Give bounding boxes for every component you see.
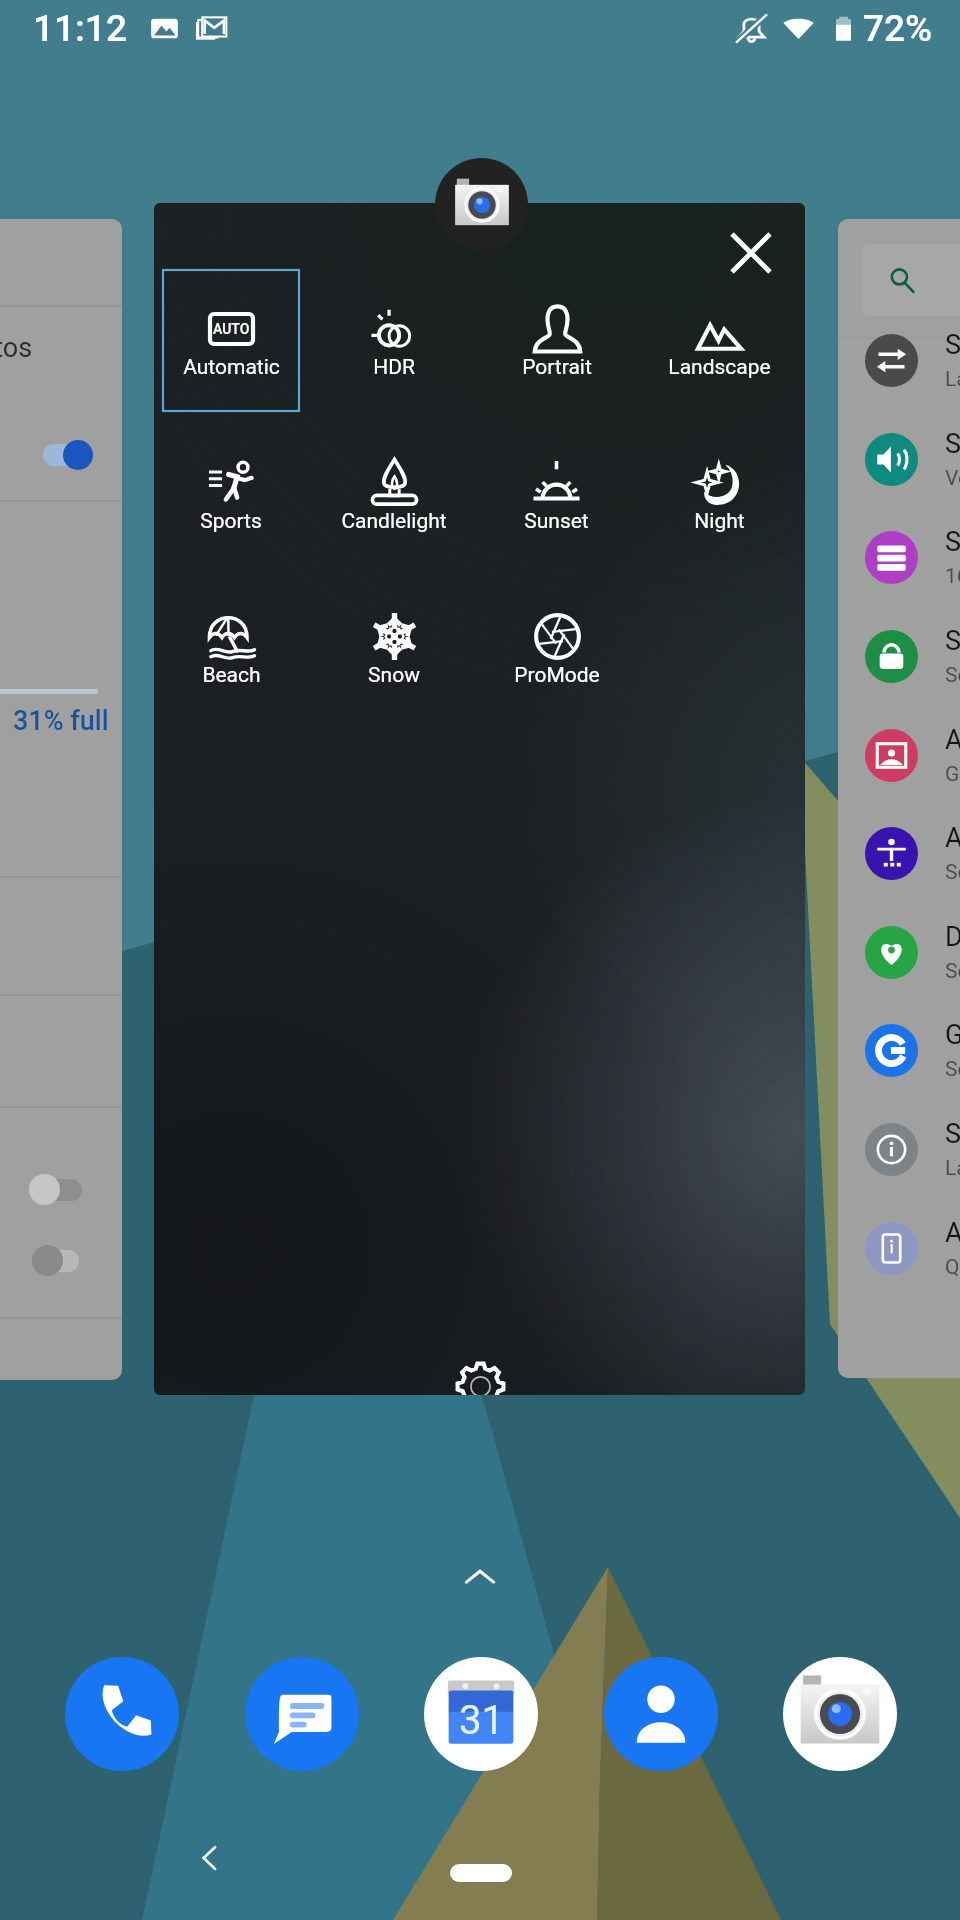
staticText: Screen lock <box>945 663 960 688</box>
staticText: Beach <box>202 663 261 688</box>
button[interactable]: Landscape <box>638 270 801 424</box>
staticText: Portrait <box>522 355 592 380</box>
button[interactable]: Calendar <box>424 1657 538 1771</box>
button[interactable]: Digital Wellbeing <box>838 920 960 984</box>
staticText: Sunset <box>524 509 589 534</box>
button[interactable]: ProMode <box>475 578 638 732</box>
staticText: About phone <box>945 1217 960 1249</box>
staticText: Services <box>945 1057 960 1082</box>
staticText: Sports <box>200 509 262 534</box>
staticText: Candlelight <box>341 509 447 534</box>
staticText: Sound <box>945 428 960 460</box>
button[interactable]: HDR <box>312 270 475 424</box>
staticText: 72% <box>863 7 933 50</box>
button[interactable]: Contacts <box>604 1657 718 1771</box>
staticText: HDR <box>373 355 415 380</box>
staticText: Automatic <box>183 355 280 380</box>
staticText: Night <box>694 509 745 534</box>
staticText: Accounts <box>945 724 960 756</box>
button[interactable]: Messages <box>245 1657 359 1771</box>
staticText: Google <box>945 762 960 787</box>
button[interactable]: Sound <box>838 427 960 491</box>
staticText: 11:12 <box>33 7 127 50</box>
staticText: Screen readers <box>945 860 960 885</box>
button[interactable]: Accessibility <box>838 821 960 885</box>
button[interactable]: Portrait <box>475 270 638 424</box>
staticText: Google <box>945 1019 960 1051</box>
button[interactable]: Sync <box>838 328 960 392</box>
staticText: 31 <box>459 1697 504 1744</box>
staticText: Storage <box>945 526 960 558</box>
button[interactable]: Settings <box>435 1341 525 1395</box>
button[interactable]: Security <box>838 624 960 688</box>
staticText: Volume <box>945 466 960 491</box>
staticText: AUTO <box>213 321 250 337</box>
button[interactable]: AUTO <box>154 270 312 424</box>
button[interactable]: Sports <box>154 424 312 578</box>
staticText: 16 GB used <box>945 564 960 589</box>
staticText: Sync <box>945 329 960 361</box>
staticText: Languages, time <box>945 1156 960 1181</box>
button[interactable]: Snow <box>312 578 475 732</box>
staticText: Landscape <box>668 355 771 380</box>
button[interactable]: Storage <box>838 525 960 589</box>
button[interactable]: Camera <box>783 1657 897 1771</box>
staticText: Quick start <box>945 1255 960 1280</box>
staticText: 31% full <box>13 705 109 737</box>
staticText: Snow <box>368 663 420 688</box>
button[interactable]: Phone <box>65 1657 179 1771</box>
button[interactable]: Accounts <box>838 723 960 787</box>
button[interactable]: Sunset <box>475 424 638 578</box>
staticText: Screen time <box>945 959 960 984</box>
staticText: Accessibility <box>945 822 960 854</box>
staticText: Digital Wellbeing <box>945 921 960 953</box>
button[interactable]: Close <box>705 207 797 299</box>
button[interactable]: Search settings <box>862 244 960 316</box>
staticText: Last sync <box>945 367 960 392</box>
button[interactable]: About phone <box>838 1216 960 1280</box>
staticText: Security <box>945 625 960 657</box>
staticText: ProMode <box>514 663 600 688</box>
button[interactable]: Beach <box>154 578 312 732</box>
button[interactable]: Night <box>638 424 801 578</box>
staticText: Back up photos <box>0 332 33 364</box>
button[interactable]: Google <box>838 1018 960 1082</box>
button[interactable]: System <box>838 1117 960 1181</box>
staticText: System <box>945 1118 960 1150</box>
button[interactable]: Candlelight <box>312 424 475 578</box>
